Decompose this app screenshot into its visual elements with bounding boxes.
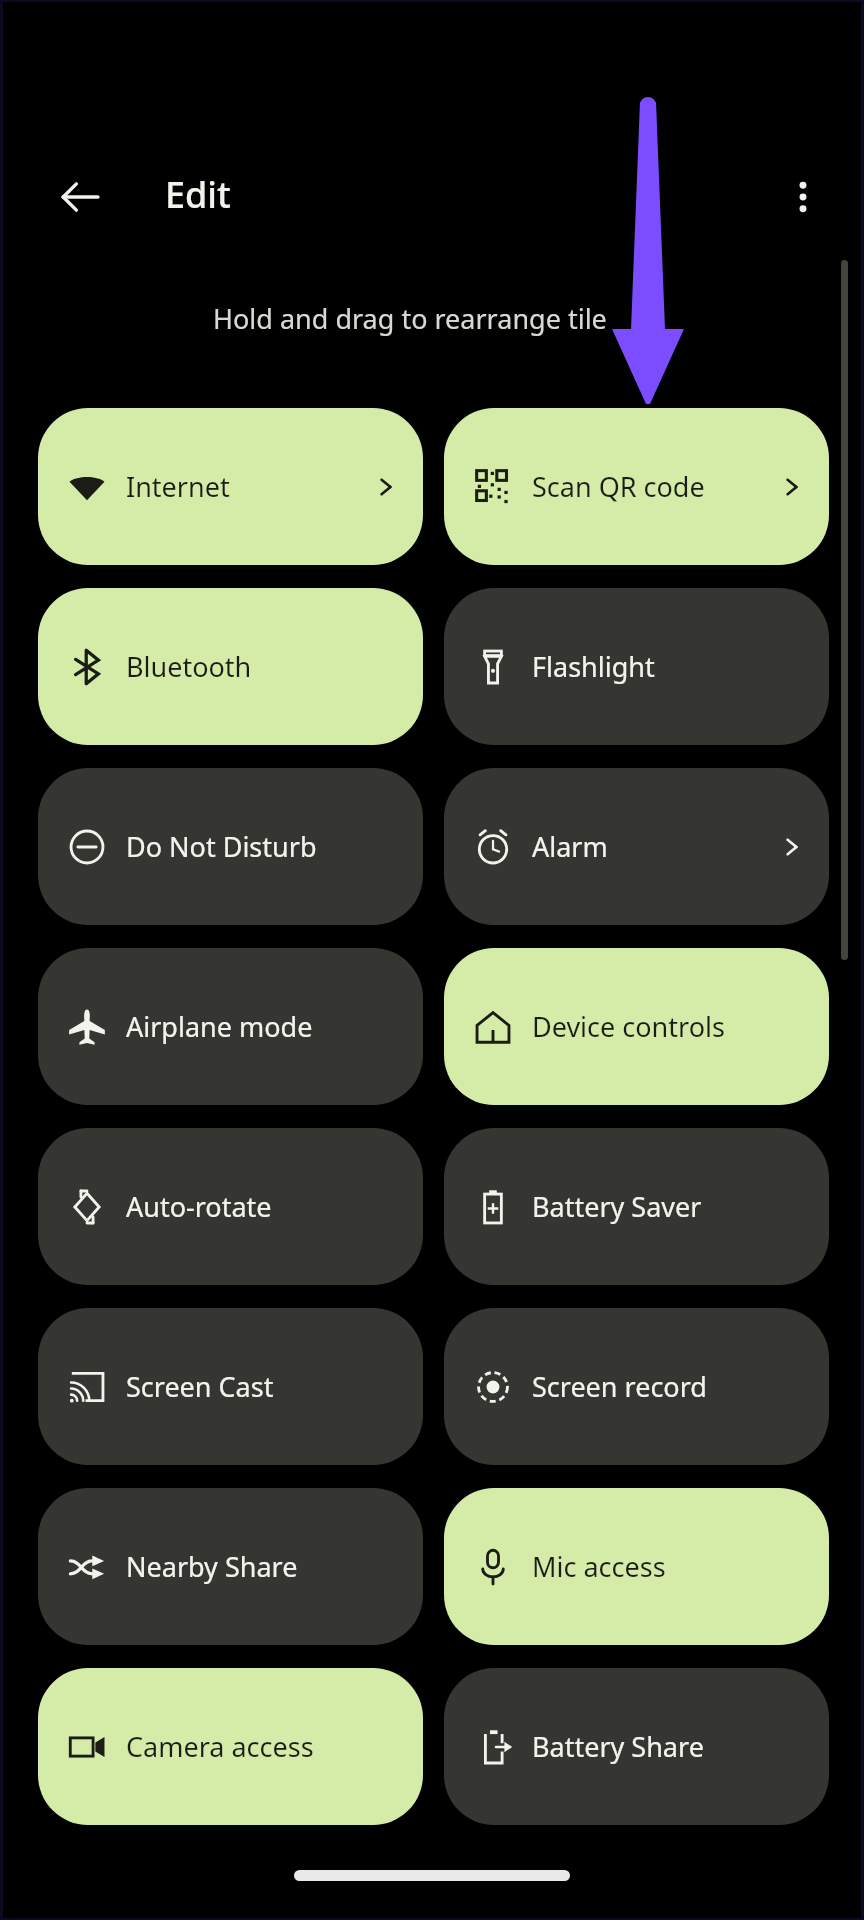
staticText: Bluetooth: [126, 648, 399, 685]
button[interactable]: Device controls: [444, 948, 829, 1105]
button[interactable]: Scan QR code: [444, 408, 829, 565]
button[interactable]: Back: [50, 167, 110, 227]
button[interactable]: Bluetooth: [38, 588, 423, 745]
staticText: Battery Saver: [532, 1188, 805, 1225]
staticText: Camera access: [126, 1728, 399, 1765]
button[interactable]: Mic access: [444, 1488, 829, 1645]
staticText: Battery Share: [532, 1728, 805, 1765]
button[interactable]: Flashlight: [444, 588, 829, 745]
staticText: Hold and drag to rearrange tile: [213, 300, 607, 337]
button[interactable]: Screen Cast: [38, 1308, 423, 1465]
button[interactable]: Nearby Share: [38, 1488, 423, 1645]
staticText: Nearby Share: [126, 1548, 399, 1585]
staticText: Auto-rotate: [126, 1188, 399, 1225]
staticText: Screen record: [532, 1368, 805, 1405]
button[interactable]: Alarm: [444, 768, 829, 925]
staticText: Device controls: [532, 1008, 805, 1045]
button[interactable]: Battery Share: [444, 1668, 829, 1825]
button[interactable]: Airplane mode: [38, 948, 423, 1105]
staticText: Edit: [165, 170, 231, 219]
staticText: Alarm: [532, 828, 779, 865]
staticText: Scan QR code: [532, 468, 779, 505]
staticText: Mic access: [532, 1548, 805, 1585]
staticText: Do Not Disturb: [126, 828, 399, 865]
staticText: Screen Cast: [126, 1368, 399, 1405]
staticText: Flashlight: [532, 648, 805, 685]
button[interactable]: More options: [773, 167, 833, 227]
staticText: Internet: [126, 468, 373, 505]
button[interactable]: Screen record: [444, 1308, 829, 1465]
button[interactable]: Internet: [38, 408, 423, 565]
button[interactable]: Camera access: [38, 1668, 423, 1825]
button[interactable]: Battery Saver: [444, 1128, 829, 1285]
button[interactable]: Auto-rotate: [38, 1128, 423, 1285]
staticText: Airplane mode: [126, 1008, 399, 1045]
button[interactable]: Do Not Disturb: [38, 768, 423, 925]
